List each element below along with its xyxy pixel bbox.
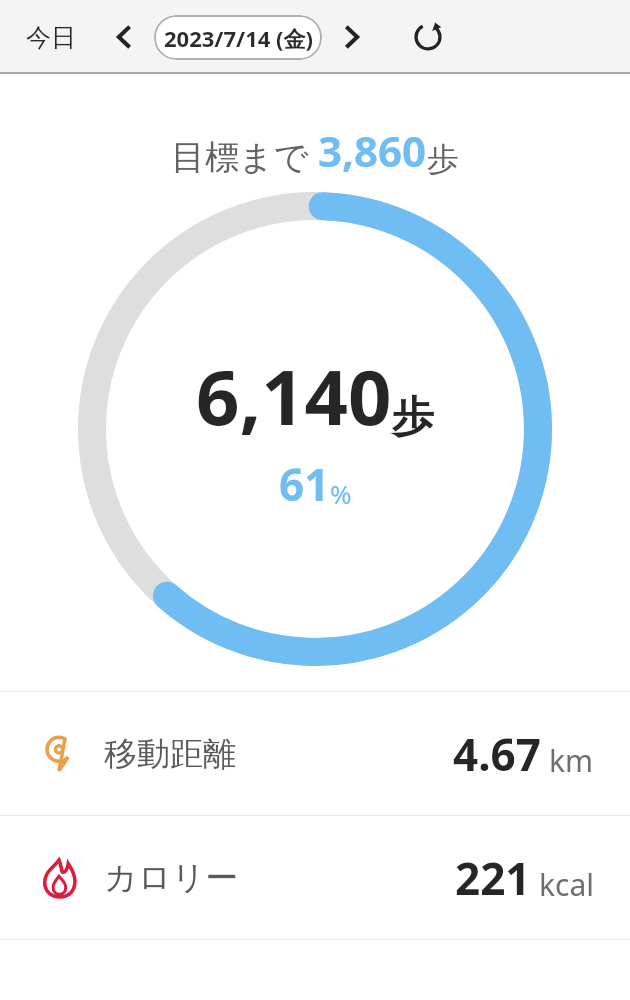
staticText: km — [549, 740, 594, 781]
staticText: kcal — [539, 864, 594, 905]
staticText: % — [330, 476, 352, 511]
button[interactable]: Previous day — [102, 15, 146, 59]
staticText: 6,140 — [196, 344, 392, 448]
other: Calories — [36, 855, 82, 901]
button[interactable]: 2023/7/14 (金) — [154, 15, 322, 60]
staticText: 4.67 — [453, 724, 541, 784]
button[interactable]: Calories — [0, 816, 630, 939]
other: Distance — [36, 731, 82, 777]
button[interactable]: Next day — [330, 15, 374, 59]
staticText: 221 — [455, 848, 531, 908]
button[interactable]: Refresh — [404, 13, 452, 61]
staticText: 2023/7/14 (金) — [164, 23, 313, 53]
staticText: 歩 — [392, 391, 434, 444]
button[interactable]: 今日 — [22, 16, 80, 59]
staticText: 61 — [279, 454, 330, 514]
staticText: 目標まで — [171, 133, 318, 179]
staticText: 今日 — [26, 22, 76, 53]
staticText: 移動距離 — [104, 733, 236, 775]
button[interactable]: Distance — [0, 692, 630, 815]
staticText: 歩 — [427, 139, 459, 179]
staticText: カロリー — [104, 857, 239, 899]
staticText: 3,860 — [318, 122, 427, 179]
